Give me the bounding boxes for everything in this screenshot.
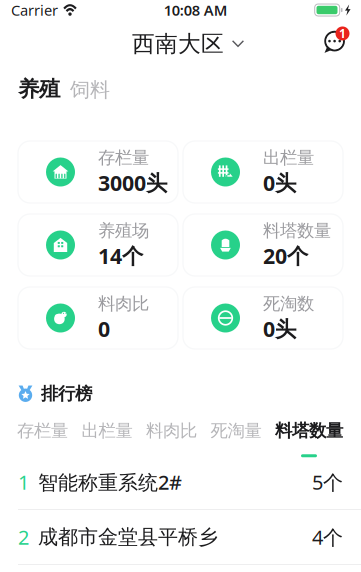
button[interactable]: 1: [0, 455, 361, 510]
button[interactable]: 死淘数: [183, 287, 343, 349]
staticText: 14个: [98, 241, 143, 270]
button[interactable]: 料塔数量: [183, 214, 343, 276]
button[interactable]: 养殖场: [18, 214, 178, 276]
staticText: 出栏量: [81, 420, 132, 441]
button[interactable]: 存栏量: [17, 420, 68, 457]
button[interactable]: 西南大区: [122, 22, 255, 66]
staticText: 饲料: [70, 78, 110, 102]
button[interactable]: Messages: [315, 19, 356, 60]
staticText: 料肉比: [98, 293, 149, 314]
staticText: 料塔数量: [275, 420, 343, 441]
button[interactable]: 死淘量: [210, 420, 261, 457]
staticText: 死淘量: [210, 420, 261, 441]
button[interactable]: 料肉比: [18, 287, 178, 349]
staticText: 10:08 AM: [164, 0, 228, 20]
staticText: 1: [18, 469, 29, 495]
staticText: 出栏量: [263, 147, 314, 168]
staticText: 排行榜: [41, 383, 92, 404]
staticText: 5个: [312, 469, 343, 495]
button[interactable]: 存栏量: [18, 141, 178, 203]
staticText: 西南大区: [132, 30, 224, 58]
button[interactable]: 出栏量: [81, 420, 132, 457]
staticText: 存栏量: [17, 420, 68, 441]
staticText: 1: [339, 25, 346, 41]
staticText: 成都市金堂县平桥乡: [38, 525, 218, 549]
staticText: 0: [98, 314, 110, 343]
staticText: 存栏量: [98, 147, 149, 168]
button[interactable]: 料塔数量: [275, 420, 343, 457]
staticText: 智能称重系统2#: [38, 469, 182, 495]
staticText: Carrier: [11, 0, 58, 20]
staticText: 料塔数量: [263, 220, 331, 241]
button[interactable]: 养殖: [18, 76, 60, 102]
staticText: 料肉比: [146, 420, 197, 441]
staticText: 养殖: [18, 76, 60, 102]
button[interactable]: 2: [0, 510, 361, 565]
staticText: 20个: [263, 241, 308, 270]
staticText: 3000头: [98, 168, 167, 197]
button[interactable]: 饲料: [70, 78, 110, 102]
button[interactable]: 出栏量: [183, 141, 343, 203]
staticText: 0头: [263, 168, 296, 197]
staticText: 养殖场: [98, 220, 149, 241]
staticText: 2: [18, 524, 29, 550]
button[interactable]: 料肉比: [146, 420, 197, 457]
staticText: 0头: [263, 314, 296, 343]
staticText: 死淘数: [263, 293, 314, 314]
staticText: 4个: [312, 524, 343, 550]
